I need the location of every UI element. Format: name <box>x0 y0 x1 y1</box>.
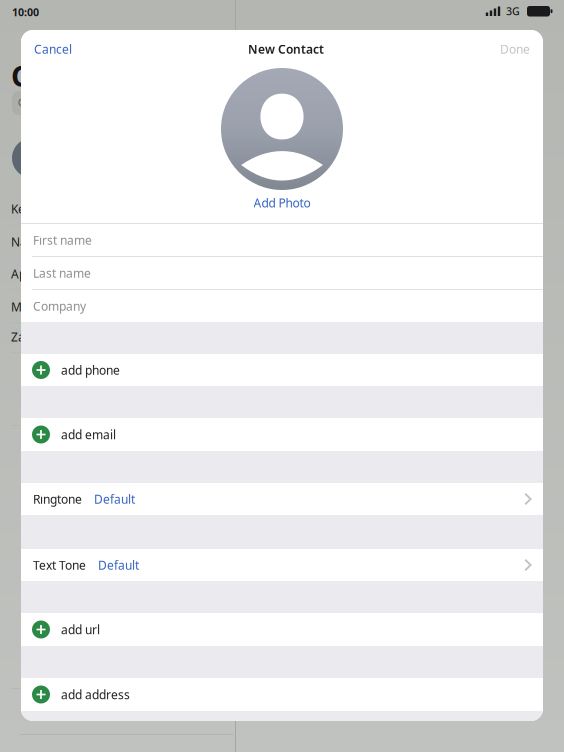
button[interactable]: Ringtone <box>21 483 543 515</box>
button[interactable]: Cancel <box>21 34 85 64</box>
button[interactable]: Company <box>21 290 543 322</box>
staticText: Ap <box>11 266 26 282</box>
button[interactable]: add address <box>21 678 543 711</box>
staticText: Default <box>94 491 135 507</box>
staticText: Ke <box>11 201 25 217</box>
staticText: 10:00 <box>12 5 39 19</box>
button[interactable]: add url <box>21 613 543 646</box>
button[interactable]: Done <box>487 34 543 64</box>
staticText: New Contact <box>248 41 324 57</box>
staticText: Mi <box>11 299 25 315</box>
button[interactable]: First name <box>21 224 543 256</box>
staticText: Contacts <box>11 56 141 95</box>
button[interactable]: Add Photo <box>253 190 310 217</box>
staticText: Na <box>11 234 27 250</box>
staticText: 3G <box>506 4 520 18</box>
staticText: Company <box>33 298 86 314</box>
button[interactable]: add email <box>21 418 543 451</box>
staticText: Cancel <box>34 41 72 57</box>
staticText: Done <box>500 41 530 57</box>
button[interactable]: add phone <box>21 354 543 386</box>
staticText: add phone <box>61 362 120 378</box>
staticText: add email <box>61 426 116 442</box>
button[interactable]: Last name <box>21 257 543 289</box>
staticText: Last name <box>33 265 91 281</box>
staticText: Za <box>11 329 25 345</box>
button[interactable]: Text Tone <box>21 549 543 581</box>
staticText: Default <box>98 557 139 573</box>
staticText: First name <box>33 232 92 248</box>
staticText: Ringtone <box>33 491 82 507</box>
staticText: Text Tone <box>33 557 86 573</box>
staticText: add address <box>61 686 130 702</box>
staticText: Add Photo <box>253 195 310 211</box>
staticText: add url <box>61 621 100 637</box>
